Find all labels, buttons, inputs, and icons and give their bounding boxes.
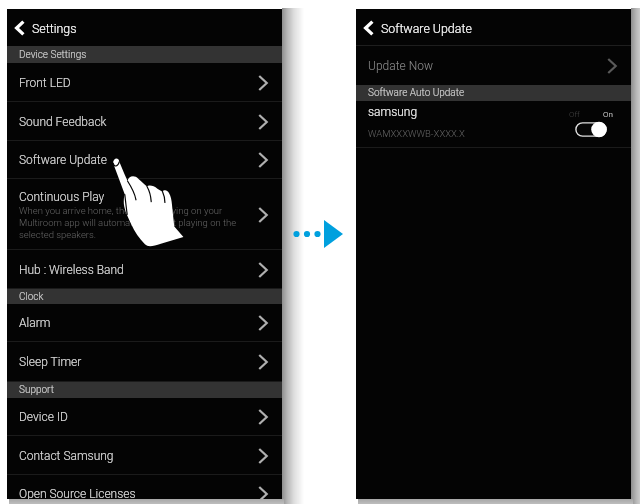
staticText: When you arrive home, the music playing … [19,205,237,240]
staticText: Clock [19,291,44,303]
staticText: Device ID [19,410,68,424]
button[interactable]: Software Update [7,141,282,179]
staticText: Hub : Wireless Band [19,263,124,277]
staticText: Continuous Play [19,190,105,204]
staticText: samsung [368,105,418,119]
staticText: Software Update [381,21,472,36]
button[interactable]: Back [10,15,30,41]
staticText: Update Now [368,59,433,73]
staticText: Alarm [19,316,51,330]
button[interactable]: samsung [356,101,631,148]
staticText: Front LED [19,76,71,90]
staticText: Sleep Timer [19,355,82,369]
button[interactable]: Software auto update toggle [575,122,607,137]
staticText: Software Auto Update [368,87,465,99]
staticText: Software Update [19,153,107,167]
button[interactable]: Update Now [356,46,631,85]
button[interactable]: Open Source Licenses [7,475,282,499]
staticText: Open Source Licenses [19,487,136,499]
button[interactable]: Alarm [7,304,282,342]
staticText: Settings [32,21,77,36]
button[interactable]: Device ID [7,398,282,436]
staticText: Off [569,110,580,119]
button[interactable]: Hub : Wireless Band [7,250,282,289]
button[interactable]: Back [359,15,379,41]
staticText: Sound Feedback [19,115,107,129]
staticText: WAMXXXWWB-XXXX.X [368,128,465,139]
button[interactable]: Sound Feedback [7,102,282,141]
button[interactable]: Continuous Play [7,179,282,250]
button[interactable]: Contact Samsung [7,436,282,475]
staticText: On [603,110,613,119]
staticText: Support [19,384,54,396]
button[interactable]: Sleep Timer [7,342,282,382]
staticText: Device Settings [19,49,87,61]
button[interactable]: Front LED [7,63,282,102]
staticText: Contact Samsung [19,449,114,463]
